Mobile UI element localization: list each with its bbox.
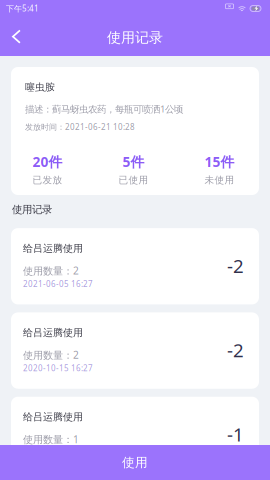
staticText: 发放时间：2021-06-21 10:28: [25, 121, 135, 132]
staticText: 已使用: [118, 174, 148, 186]
staticText: 使用数量：2: [23, 348, 79, 362]
staticText: 使用数量：1: [23, 432, 79, 446]
staticText: 15件: [204, 152, 234, 171]
staticText: -2: [227, 253, 244, 278]
staticText: 使用记录: [107, 29, 163, 46]
staticText: 给吕运腾使用: [23, 242, 83, 255]
staticText: 5件: [122, 152, 144, 171]
staticText: -2: [227, 337, 244, 363]
staticText: 给吕运腾使用: [23, 326, 83, 339]
staticText: 使用: [122, 454, 148, 470]
staticText: 2020-10-15 16:27: [23, 363, 93, 374]
button[interactable]: 给吕运腾使用: [11, 312, 259, 389]
staticText: 描述：蓟马蚜虫农药，每瓶可喷洒1公顷: [25, 102, 183, 115]
staticText: 噻虫胺: [25, 81, 55, 93]
staticText: 2021-06-05 16:27: [23, 278, 93, 289]
button[interactable]: 给吕运腾使用: [11, 397, 259, 473]
staticText: 使用数量：2: [23, 264, 79, 277]
staticText: 20件: [32, 152, 62, 171]
staticText: 已发放: [32, 174, 62, 186]
staticText: 下午5:41: [6, 3, 39, 14]
button[interactable]: 使用: [0, 445, 270, 480]
staticText: 给吕运腾使用: [23, 411, 83, 423]
button[interactable]: 给吕运腾使用: [11, 228, 259, 304]
staticText: 未使用: [204, 174, 234, 186]
staticText: 使用记录: [12, 203, 52, 216]
button[interactable]: Back: [0, 21, 32, 51]
staticText: -1: [227, 422, 244, 447]
